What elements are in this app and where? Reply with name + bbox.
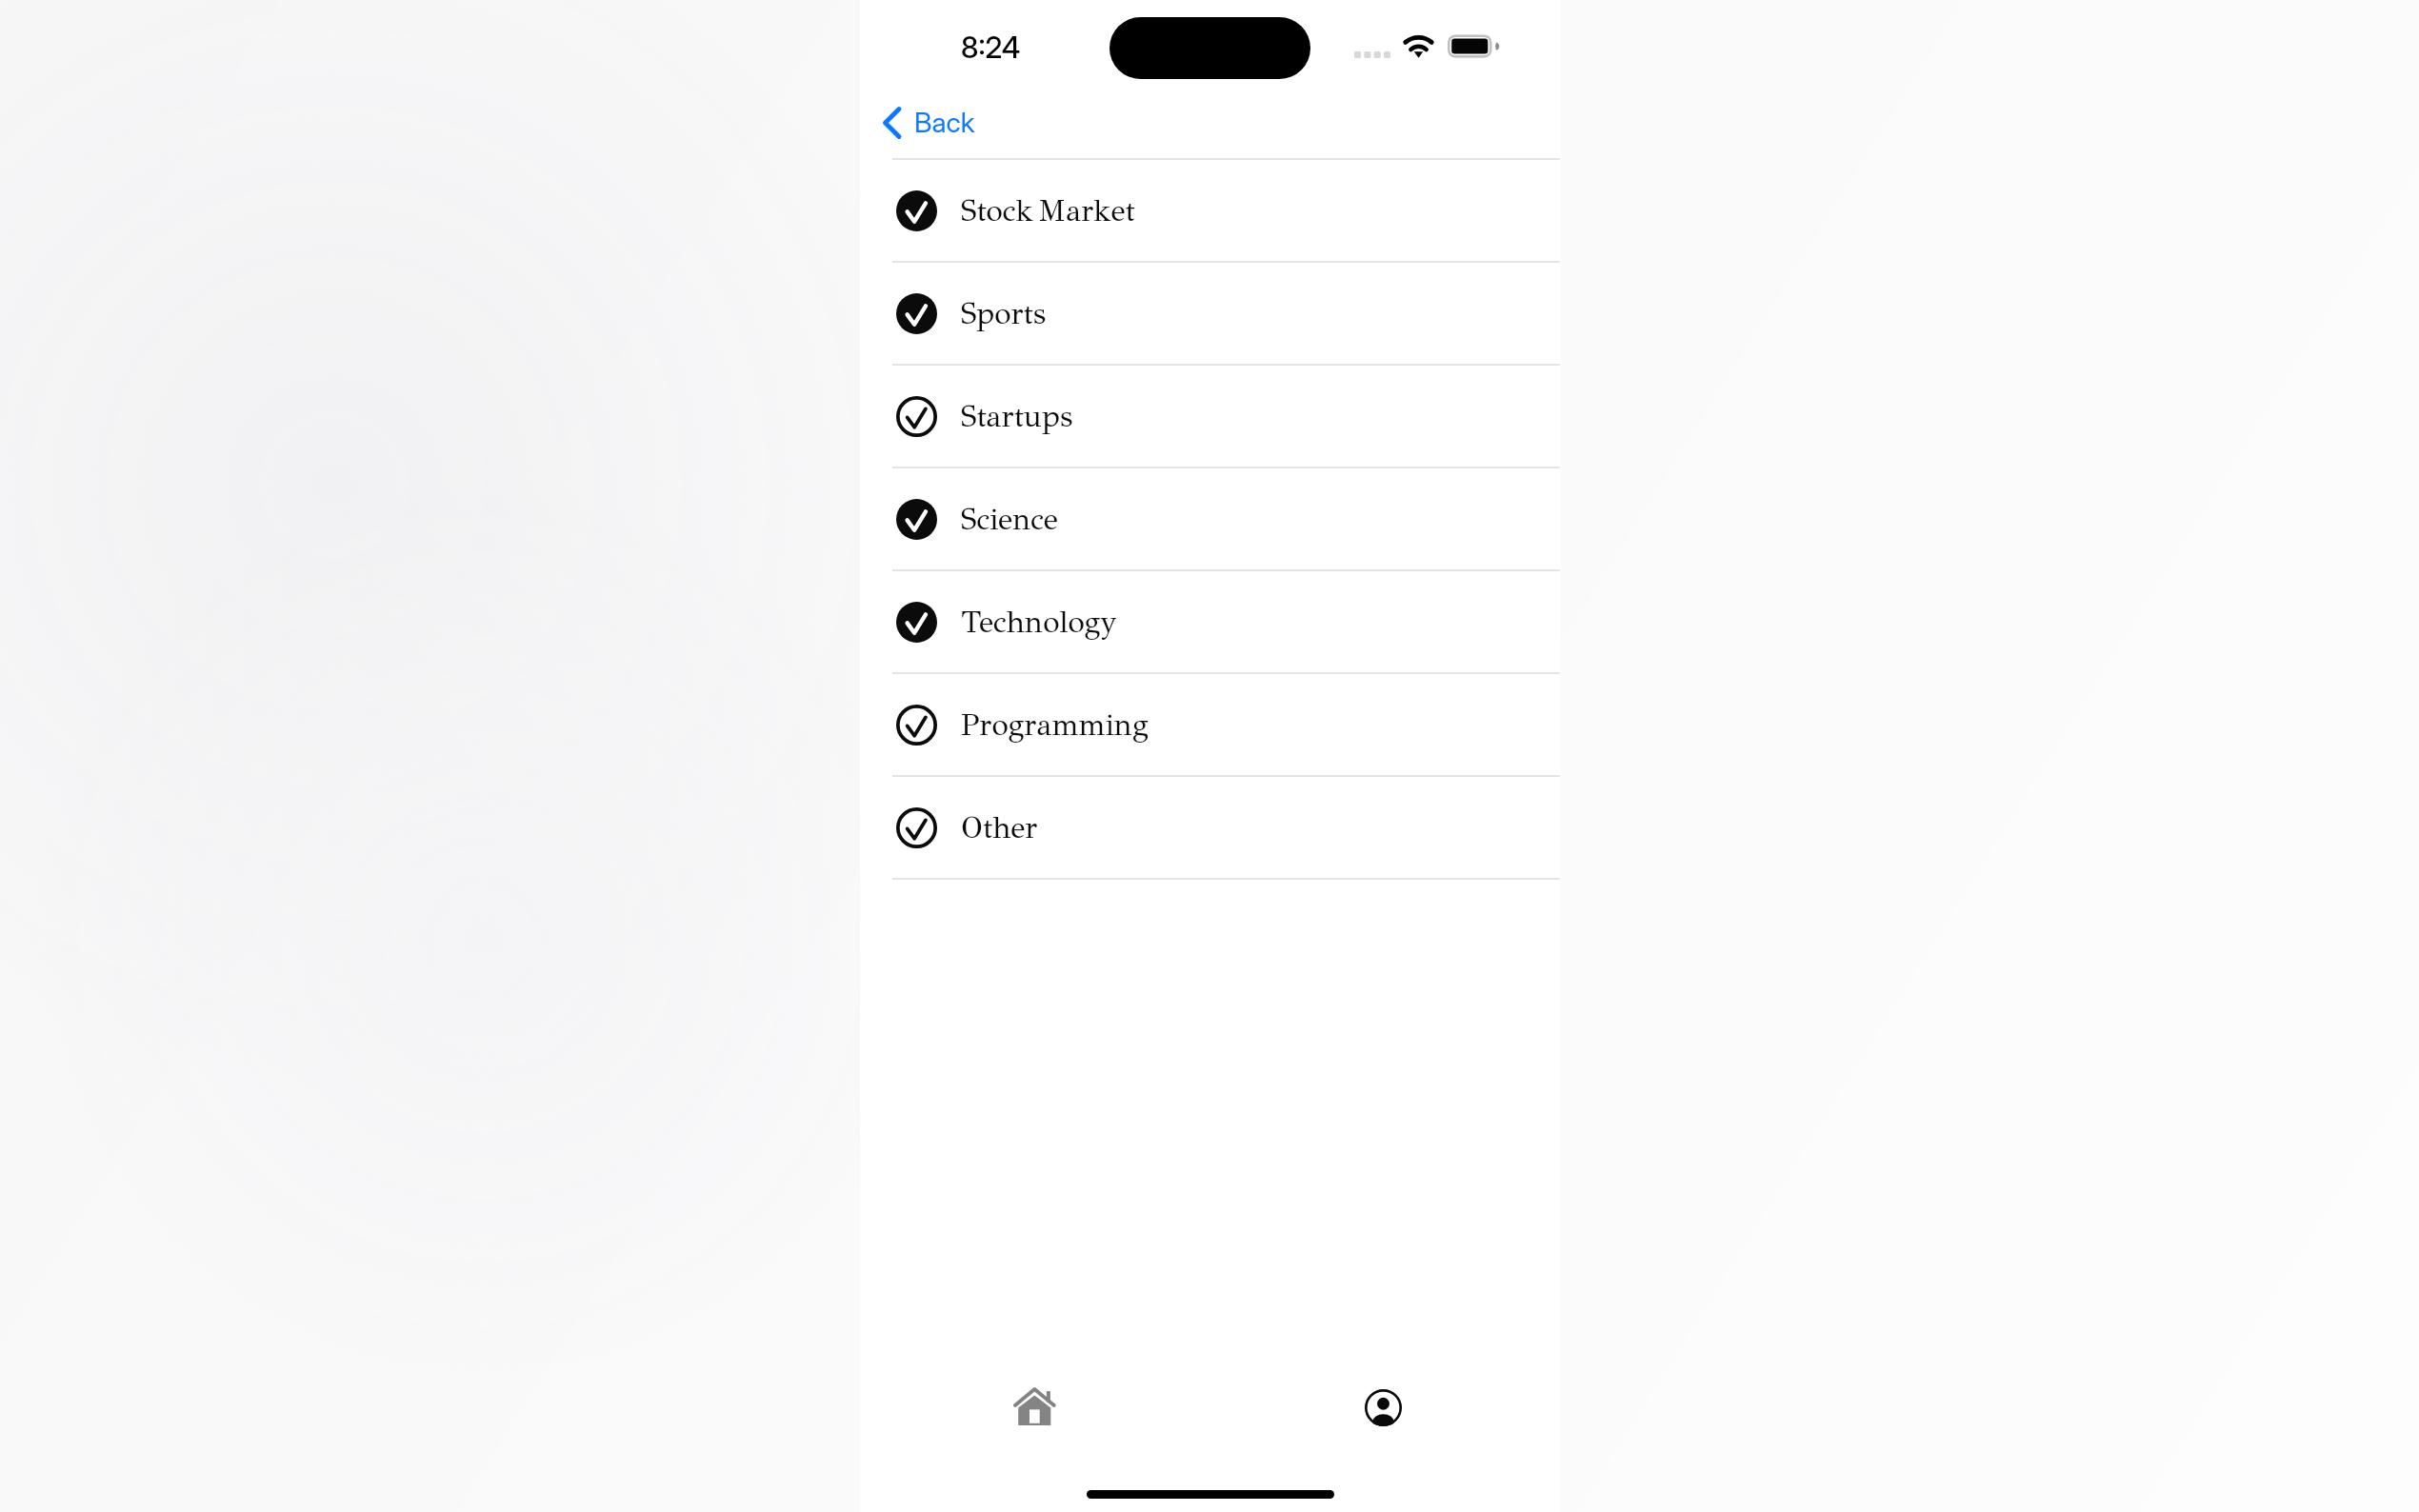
button[interactable]: Stock — [860, 160, 1560, 261]
staticText: Sports — [961, 295, 1046, 332]
staticText: Technology — [961, 604, 1117, 641]
button[interactable]: Sports — [860, 263, 1560, 364]
staticText: Programming — [961, 706, 1149, 744]
staticText: Back — [914, 106, 975, 139]
staticText: Other — [961, 809, 1038, 846]
staticText: 8:24 — [961, 30, 1021, 66]
staticText: Science — [961, 501, 1058, 538]
staticText: Market — [1038, 192, 1135, 229]
button[interactable]: Home — [860, 1360, 1209, 1464]
button[interactable]: Other — [860, 777, 1560, 878]
staticText: Startups — [961, 398, 1073, 435]
button[interactable]: Startups — [860, 366, 1560, 467]
staticText: Stock — [961, 192, 1034, 229]
button[interactable]: Science — [860, 468, 1560, 569]
button[interactable]: Technology — [860, 571, 1560, 672]
button[interactable]: Programming — [860, 674, 1560, 775]
button[interactable]: Back — [873, 90, 989, 155]
button[interactable]: Profile — [1209, 1360, 1560, 1464]
